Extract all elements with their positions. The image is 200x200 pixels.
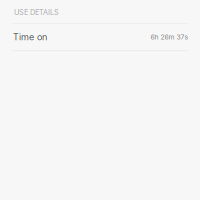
staticText: Time on	[13, 31, 47, 42]
staticText: USE DETAILS	[14, 8, 59, 17]
staticText: 6h 26m 37s	[150, 33, 188, 41]
button[interactable]: Time on	[0, 24, 200, 50]
